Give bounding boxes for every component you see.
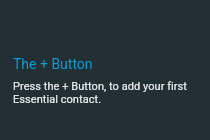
staticText: The + Button [13,56,93,72]
staticText: Press the + Button, to add your first Es… [13,80,202,106]
